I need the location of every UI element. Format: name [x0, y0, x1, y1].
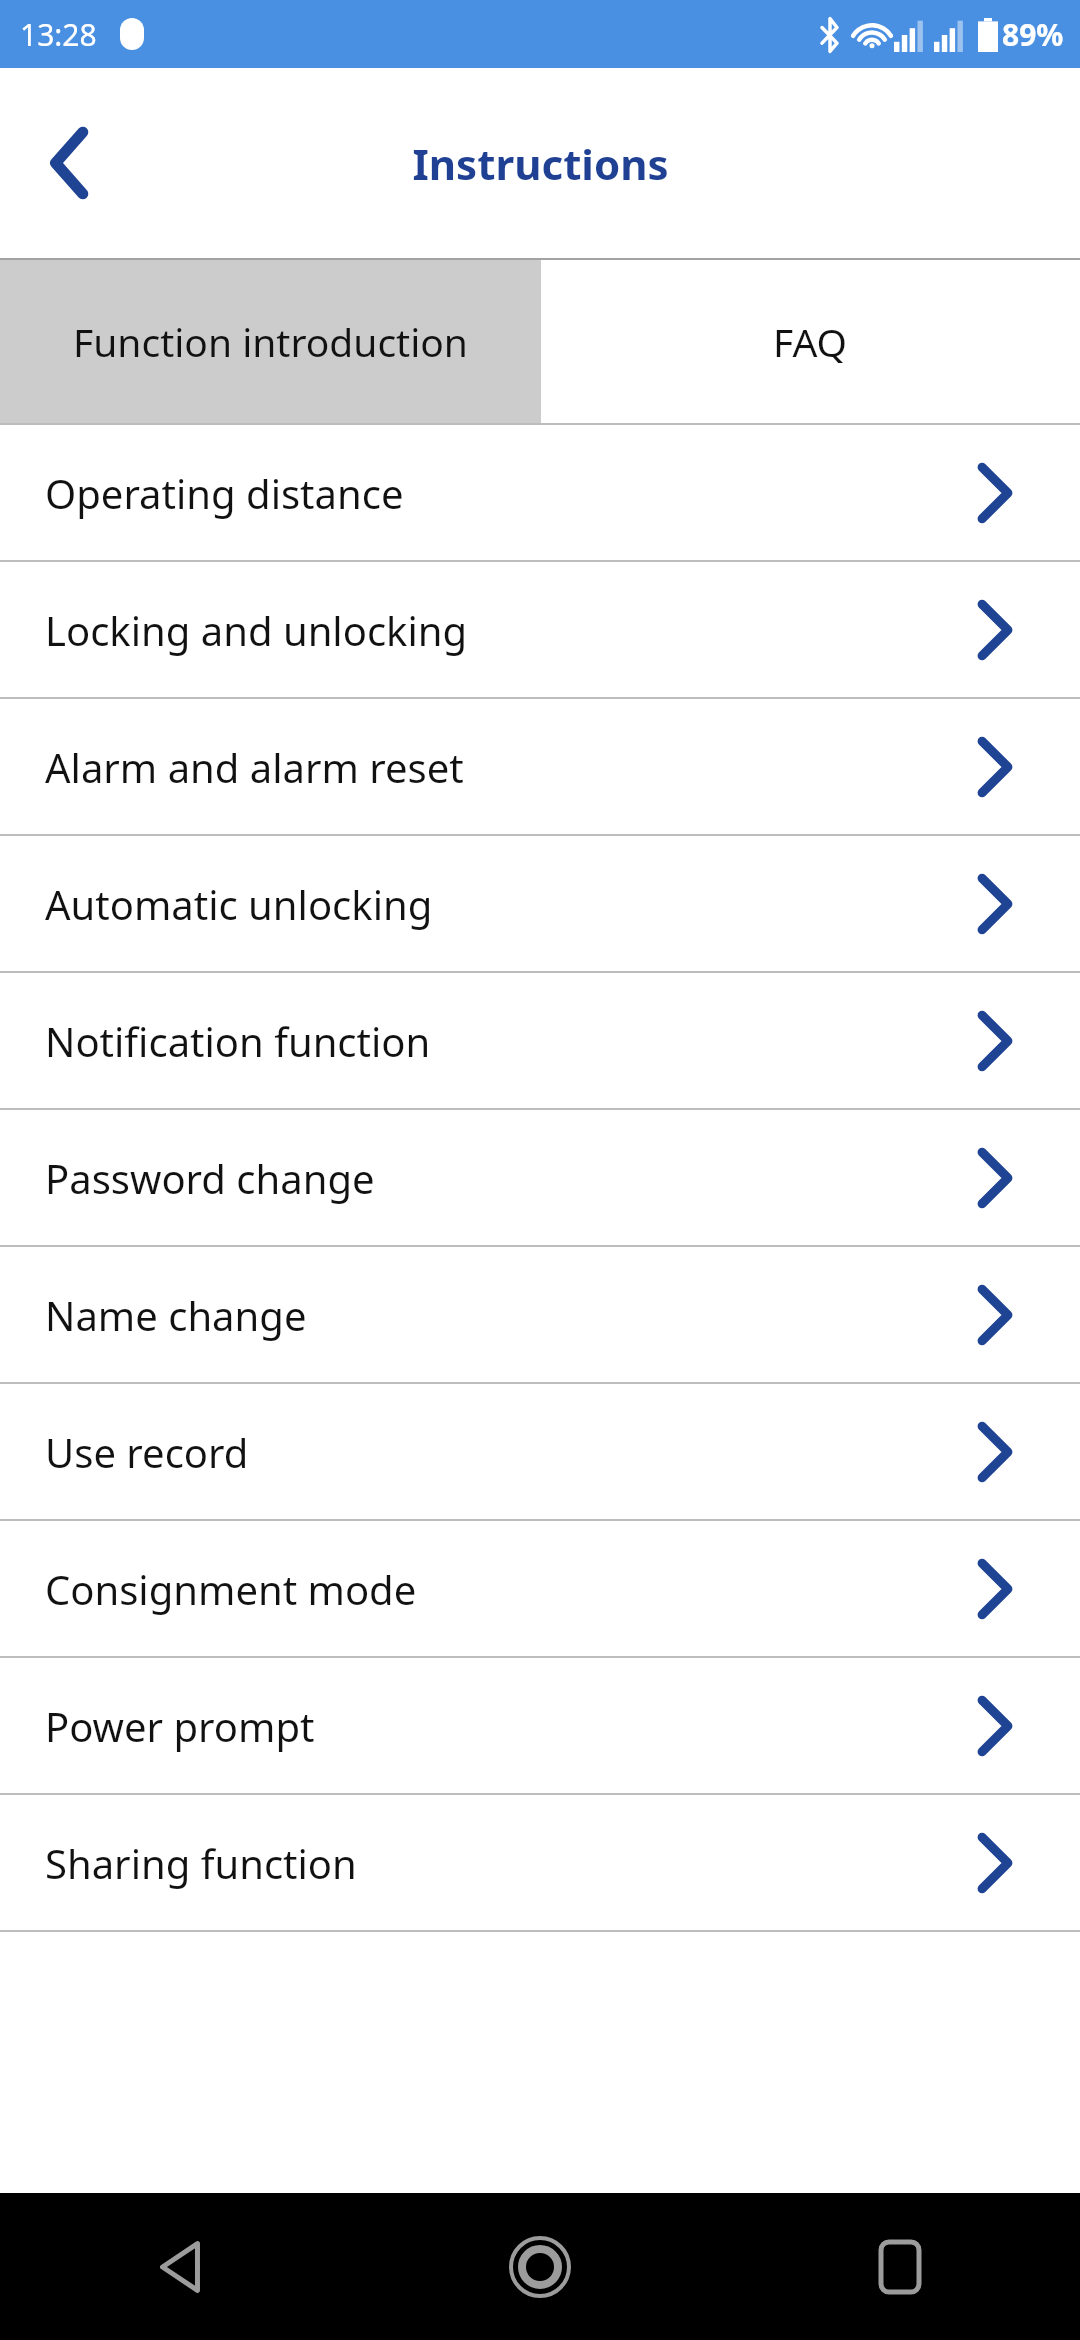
- button[interactable]: Name change: [0, 1247, 1080, 1382]
- staticText: 89%: [1002, 14, 1064, 55]
- button[interactable]: Use record: [0, 1384, 1080, 1519]
- staticText: Instructions: [412, 135, 669, 192]
- button[interactable]: Recent apps: [720, 2193, 1080, 2340]
- staticText: Function introduction: [73, 315, 468, 368]
- staticText: FAQ: [773, 315, 848, 368]
- staticText: Use record: [45, 1425, 978, 1479]
- button[interactable]: Power prompt: [0, 1658, 1080, 1793]
- staticText: Operating distance: [45, 466, 978, 520]
- staticText: Notification function: [45, 1014, 978, 1068]
- button[interactable]: Operating distance: [0, 425, 1080, 560]
- staticText: Password change: [45, 1151, 978, 1205]
- button[interactable]: Alarm and alarm reset: [0, 699, 1080, 834]
- button[interactable]: Automatic unlocking: [0, 836, 1080, 971]
- button[interactable]: Sharing function: [0, 1795, 1080, 1930]
- staticText: Locking and unlocking: [45, 603, 978, 657]
- button[interactable]: Function introduction: [0, 260, 541, 423]
- staticText: Sharing function: [45, 1836, 978, 1890]
- staticText: Alarm and alarm reset: [45, 740, 978, 794]
- button[interactable]: Back: [0, 2193, 360, 2340]
- staticText: Power prompt: [45, 1699, 978, 1753]
- button[interactable]: Locking and unlocking: [0, 562, 1080, 697]
- staticText: Automatic unlocking: [45, 877, 978, 931]
- button[interactable]: FAQ: [541, 260, 1080, 423]
- button[interactable]: Password change: [0, 1110, 1080, 1245]
- button[interactable]: Notification function: [0, 973, 1080, 1108]
- button[interactable]: Home: [360, 2193, 720, 2340]
- staticText: Consignment mode: [45, 1562, 978, 1616]
- staticText: Name change: [45, 1288, 978, 1342]
- staticText: 13:28: [20, 14, 97, 55]
- button[interactable]: Consignment mode: [0, 1521, 1080, 1656]
- button[interactable]: Back: [20, 113, 120, 213]
